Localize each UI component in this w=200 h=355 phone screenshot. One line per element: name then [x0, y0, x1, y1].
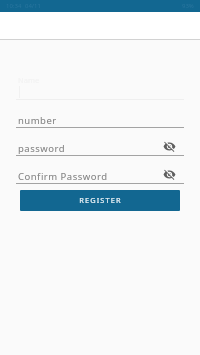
- staticText: Confirm Password: [18, 170, 108, 183]
- staticText: 04/11: [25, 2, 41, 10]
- button[interactable]: Toggle password visibility: [162, 138, 184, 155]
- button[interactable]: Toggle password visibility: [162, 166, 184, 183]
- staticText: number: [18, 114, 57, 127]
- staticText: password: [18, 142, 66, 155]
- button[interactable]: REGISTER: [20, 190, 180, 211]
- staticText: 93%: [182, 2, 194, 10]
- staticText: REGISTER: [79, 195, 122, 205]
- staticText: 10:34: [6, 2, 22, 10]
